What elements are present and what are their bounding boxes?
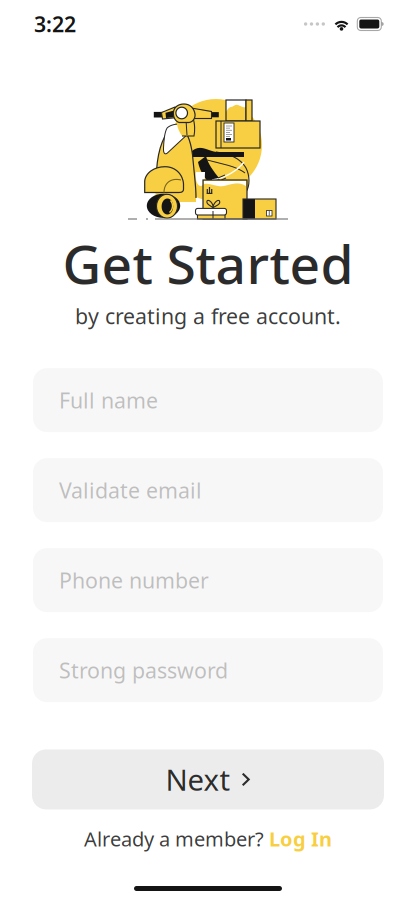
staticText: Already a member? <box>84 825 264 852</box>
staticText: Log In <box>269 825 332 852</box>
button[interactable]: Strong password <box>33 638 383 702</box>
staticText: Phone number <box>59 566 209 594</box>
staticText: by creating a free account. <box>75 302 341 330</box>
button[interactable]: Validate email <box>33 458 383 522</box>
button[interactable]: Next <box>32 749 384 809</box>
staticText: Strong password <box>59 656 228 684</box>
staticText: Get Started <box>62 228 353 299</box>
button[interactable]: Full name <box>33 368 383 432</box>
button[interactable]: Phone number <box>33 548 383 612</box>
staticText: Validate email <box>59 476 202 504</box>
staticText: Full name <box>59 386 158 414</box>
staticText: Next <box>165 760 230 799</box>
button[interactable]: Already a member? <box>84 819 332 858</box>
staticText: 3:22 <box>34 10 76 38</box>
